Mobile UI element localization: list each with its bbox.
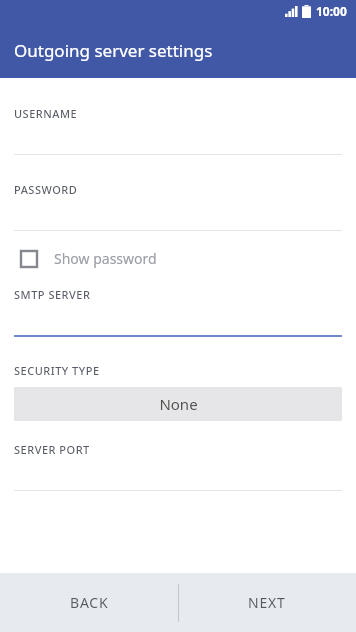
staticText: None: [159, 394, 198, 414]
staticText: SERVER PORT: [14, 442, 90, 457]
staticText: 10:00: [316, 3, 347, 19]
staticText: NEXT: [248, 593, 286, 612]
button[interactable]: BACK: [0, 573, 178, 632]
staticText: Outgoing server settings: [14, 39, 213, 62]
staticText: Show password: [54, 249, 157, 268]
button[interactable]: NEXT: [178, 573, 356, 632]
staticText: PASSWORD: [14, 182, 78, 197]
button[interactable]: None: [14, 387, 342, 421]
staticText: BACK: [70, 593, 109, 612]
button[interactable]: Show password: [14, 244, 163, 273]
staticText: SMTP SERVER: [14, 287, 91, 302]
staticText: USERNAME: [14, 106, 78, 121]
staticText: SECURITY TYPE: [14, 363, 100, 378]
